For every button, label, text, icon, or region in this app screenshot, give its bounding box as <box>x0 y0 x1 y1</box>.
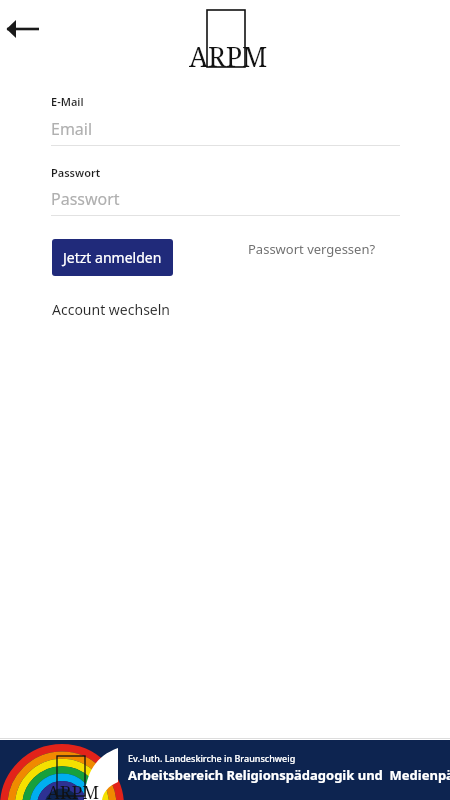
button[interactable]: Account wechseln <box>47 297 175 321</box>
button[interactable]: Jetzt anmelden <box>52 239 173 276</box>
staticText: E-Mail <box>51 94 84 109</box>
staticText: ARPM <box>47 780 100 800</box>
staticText: ARPM <box>189 38 268 75</box>
staticText: Jetzt anmelden <box>63 248 162 267</box>
button[interactable]: Passwort <box>51 182 400 216</box>
staticText: Passwort <box>51 188 120 210</box>
staticText: Passwort vergessen? <box>248 240 376 258</box>
staticText: Arbeitsbereich Religionspädagogik und Me… <box>128 766 450 784</box>
staticText: Passwort <box>51 165 101 180</box>
button[interactable]: Passwort vergessen? <box>243 236 381 262</box>
staticText: Email <box>51 118 93 140</box>
button[interactable]: Back <box>4 9 44 49</box>
staticText: Ev.-luth. Landeskirche in Braunschweig <box>128 752 296 764</box>
button[interactable]: Email <box>51 112 400 146</box>
staticText: Account wechseln <box>52 300 170 319</box>
